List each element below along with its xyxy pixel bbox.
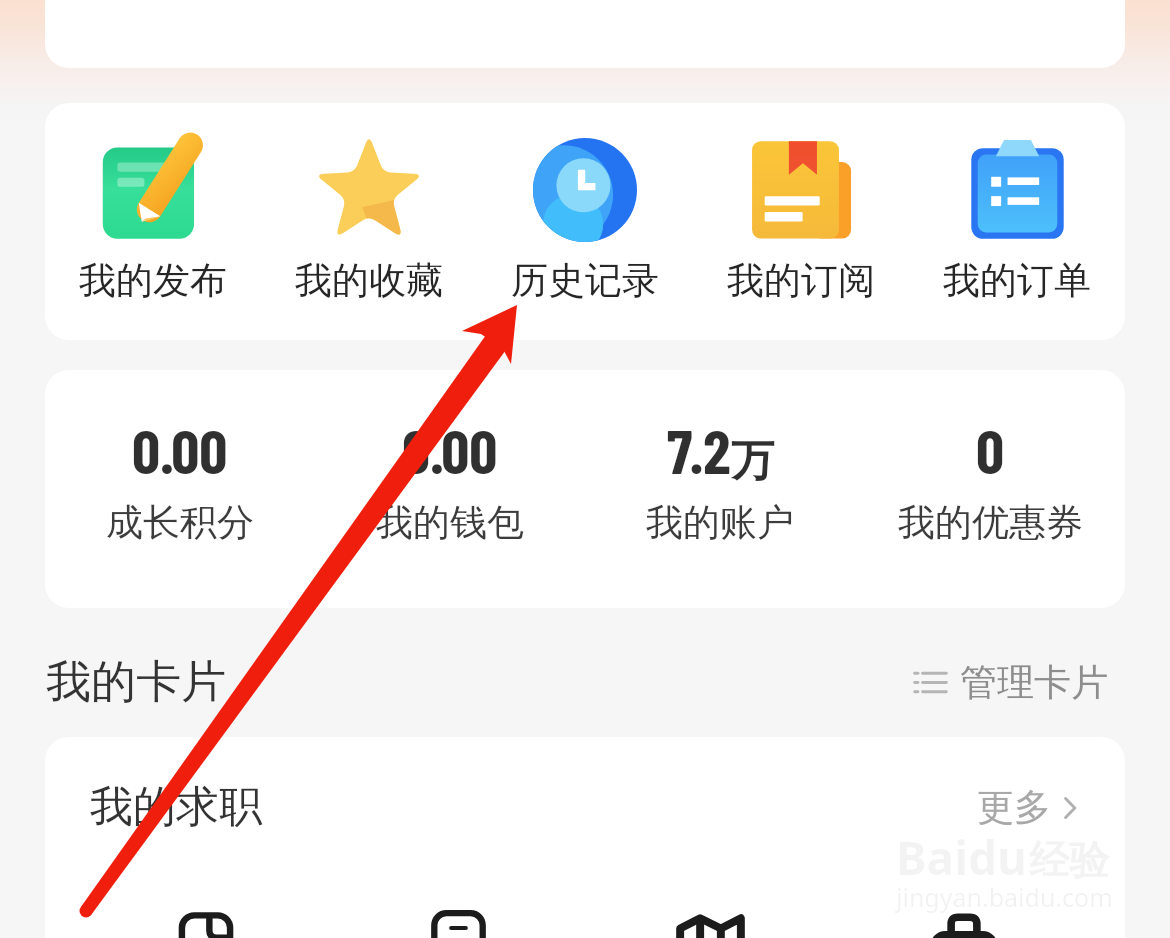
button[interactable]: 我的订单 (909, 103, 1125, 340)
button[interactable]: 求职攻略 (584, 867, 837, 938)
button[interactable]: 我的订阅 (693, 103, 909, 340)
button[interactable]: 0.00 (45, 370, 315, 608)
button[interactable]: 我的简历 (80, 867, 332, 938)
button[interactable]: 我的收藏 (261, 103, 477, 340)
staticText: 历史记录 (511, 257, 659, 304)
staticText: 0 (976, 412, 1005, 486)
staticText: 7.2 (667, 412, 731, 486)
staticText: 经验 (1029, 835, 1109, 885)
staticText: 0.00 (132, 412, 228, 486)
button[interactable]: 0.00 (315, 370, 585, 608)
staticText: 更多 (977, 784, 1051, 831)
staticText: 我的订单 (943, 257, 1091, 304)
staticText: 万 (731, 434, 774, 488)
staticText: 管理卡片 (960, 659, 1108, 706)
button[interactable]: 更多 (977, 784, 1081, 831)
button[interactable]: 我的面试 (837, 867, 1090, 938)
staticText: 我的账户 (646, 499, 794, 546)
staticText: 成长积分 (106, 499, 254, 546)
staticText: 我的发布 (79, 257, 227, 304)
staticText: jingyan.baidu.com (896, 880, 1113, 914)
staticText: 我的卡片 (46, 654, 226, 711)
button[interactable]: 我的发布 (45, 103, 261, 340)
button[interactable]: 0 (855, 370, 1125, 608)
button[interactable]: 管理卡片 (914, 659, 1108, 706)
staticText: 我的求职 (90, 780, 262, 834)
staticText: 我的订阅 (727, 257, 875, 304)
staticText: 我的钱包 (376, 499, 524, 546)
button[interactable]: 职位名片 (332, 867, 584, 938)
button[interactable]: 历史记录 (477, 103, 693, 340)
staticText: Baidu (896, 826, 1027, 889)
staticText: 0.00 (402, 412, 498, 486)
staticText: 我的优惠券 (898, 499, 1083, 546)
staticText: 我的收藏 (295, 257, 443, 304)
button[interactable]: 7.2 (585, 370, 855, 608)
